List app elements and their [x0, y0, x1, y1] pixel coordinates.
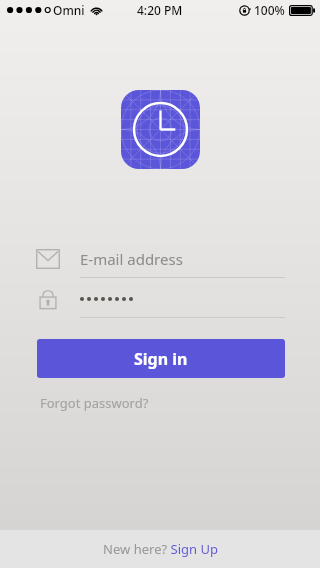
button[interactable]: Sign in: [37, 339, 285, 378]
button[interactable]: E-mail: [36, 240, 285, 278]
staticText: Forgot password?: [40, 394, 149, 412]
button[interactable]: Forgot password?: [34, 390, 155, 416]
staticText: 4:20 PM: [137, 2, 183, 18]
staticText: Omni: [53, 2, 85, 18]
button[interactable]: Password: [36, 282, 285, 316]
other: Password: [36, 287, 60, 311]
staticText: New here? Sign Up: [103, 540, 218, 558]
staticText: Sign in: [134, 348, 188, 370]
staticText: 100%: [254, 2, 285, 18]
button[interactable]: New here? Sign Up: [103, 540, 218, 558]
staticText: E-mail address: [80, 249, 183, 269]
other: E-mail: [36, 249, 60, 269]
